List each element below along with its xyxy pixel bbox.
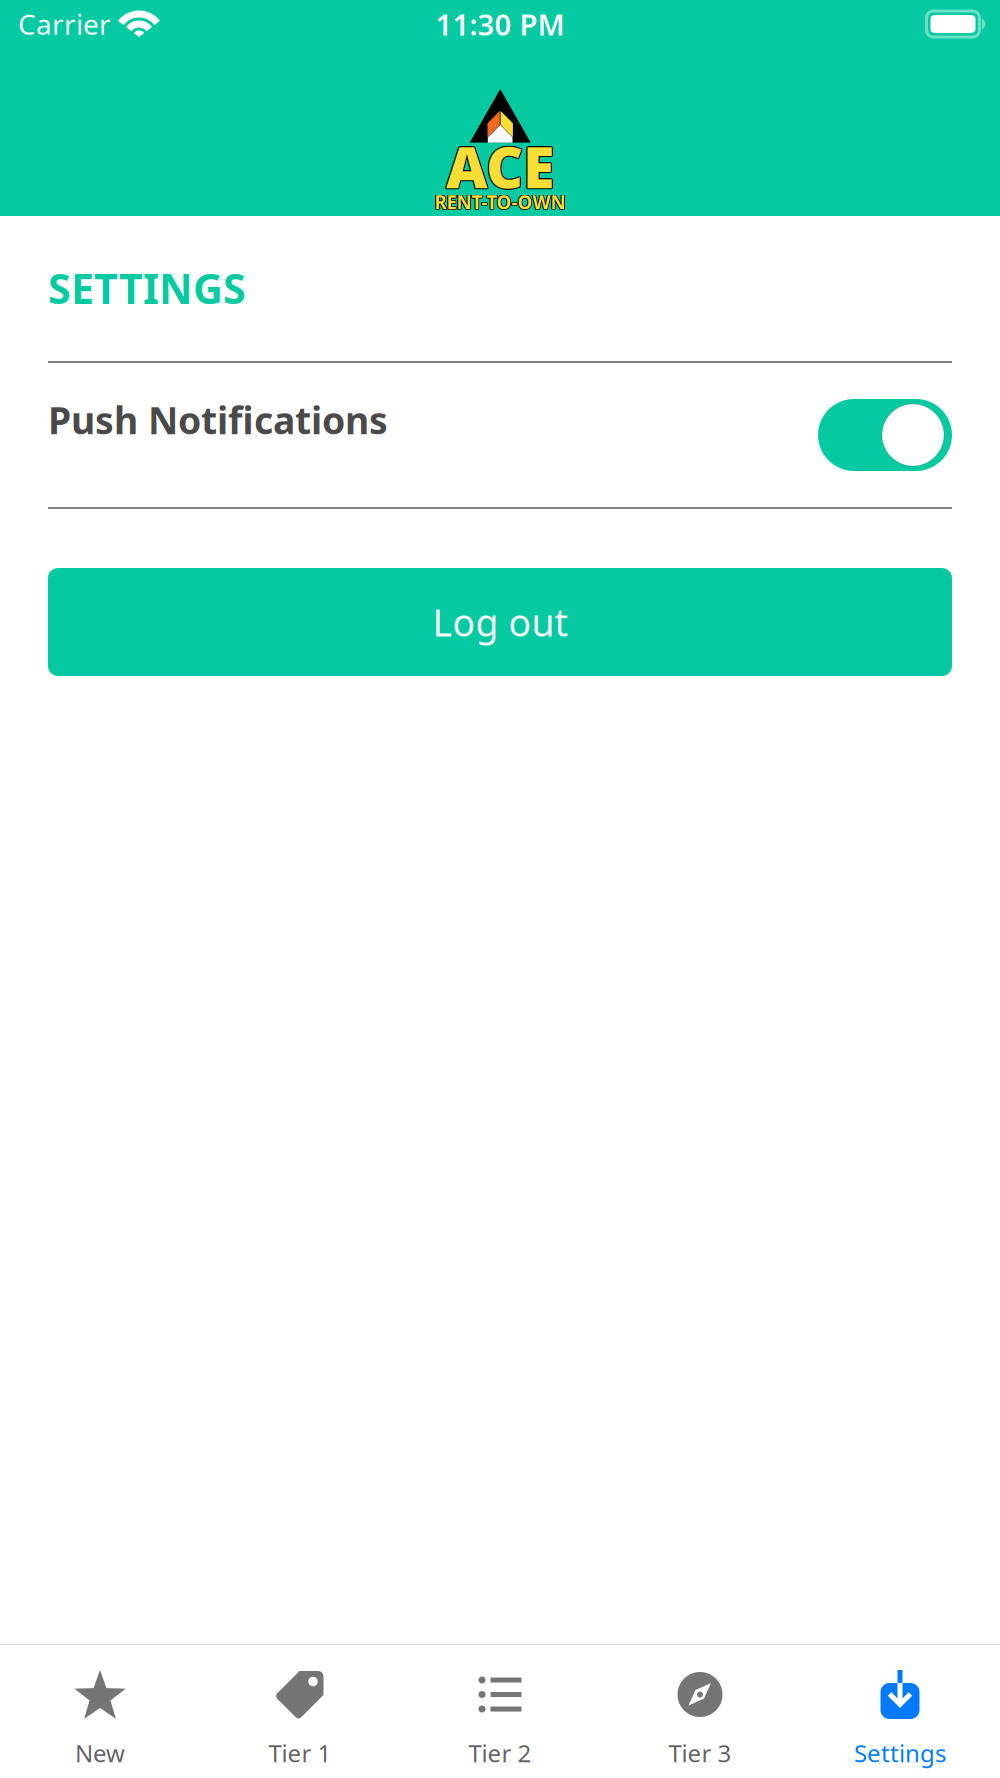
button[interactable]: Tier 2	[400, 1670, 600, 1766]
staticText: ACE	[447, 127, 555, 203]
staticText: Settings	[854, 1737, 946, 1769]
staticText: ACE	[445, 129, 553, 205]
staticText: Tier 2	[468, 1737, 531, 1769]
staticText: Tier 3	[668, 1737, 731, 1769]
staticText: ACE	[447, 129, 555, 205]
staticText: RENT-TO-OWN	[435, 190, 566, 215]
staticText: RENT-TO-OWN	[434, 190, 565, 214]
button[interactable]: Log out	[48, 568, 952, 676]
staticText: RENT-TO-OWN	[435, 189, 566, 214]
staticText: ACE	[447, 128, 555, 204]
staticText: RENT-TO-OWN	[434, 190, 565, 215]
staticText: Carrier	[18, 5, 111, 43]
staticText: ACE	[445, 128, 553, 204]
button[interactable]: Push Notifications	[818, 399, 952, 471]
staticText: ACE	[446, 128, 554, 204]
staticText: SETTINGS	[48, 261, 246, 315]
button[interactable]: Tier 1	[200, 1670, 400, 1766]
staticText: 11:30 PM	[435, 4, 564, 43]
staticText: Tier 1	[268, 1737, 331, 1769]
staticText: Push Notifications	[48, 395, 388, 445]
button[interactable]: Settings	[800, 1670, 1000, 1766]
staticText: ACE	[446, 127, 554, 203]
staticText: RENT-TO-OWN	[434, 190, 565, 214]
staticText: ACE	[446, 129, 554, 205]
staticText: Log out	[432, 597, 567, 647]
staticText: RENT-TO-OWN	[434, 190, 565, 215]
button[interactable]: Tier 3	[600, 1670, 800, 1766]
staticText: RENT-TO-OWN	[435, 190, 566, 214]
staticText: New	[75, 1737, 125, 1769]
button[interactable]: New	[0, 1670, 200, 1766]
staticText: RENT-TO-OWN	[434, 189, 565, 214]
staticText: RENT-TO-OWN	[434, 189, 565, 214]
staticText: ACE	[445, 127, 553, 203]
